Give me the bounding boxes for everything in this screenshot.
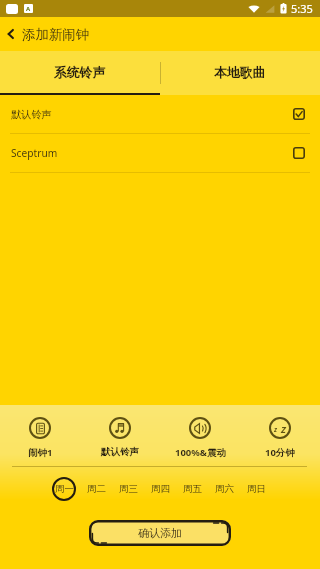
staticText: 周五 bbox=[183, 483, 202, 495]
button[interactable]: 100%&震动 bbox=[160, 417, 240, 459]
button[interactable]: 默认铃声 bbox=[80, 417, 160, 458]
button[interactable]: 周六 bbox=[212, 477, 236, 501]
staticText: z bbox=[274, 425, 278, 434]
button[interactable]: Back bbox=[0, 23, 22, 45]
staticText: 周一 bbox=[55, 483, 74, 495]
button[interactable]: 闹钟1 bbox=[0, 417, 80, 459]
staticText: 周六 bbox=[215, 483, 234, 495]
staticText: A bbox=[26, 5, 31, 13]
staticText: 周三 bbox=[119, 483, 138, 495]
staticText: 周日 bbox=[247, 483, 266, 495]
staticText: Sceptrum bbox=[11, 146, 58, 160]
button[interactable]: 周二 bbox=[84, 477, 108, 501]
staticText: 默认铃声 bbox=[11, 108, 52, 121]
staticText: 100%&震动 bbox=[175, 446, 226, 459]
staticText: 确认添加 bbox=[138, 526, 182, 540]
button[interactable]: 系统铃声 bbox=[0, 51, 160, 95]
staticText: 添加新闹钟 bbox=[22, 26, 89, 43]
button[interactable]: 本地歌曲 bbox=[160, 51, 320, 95]
staticText: 周二 bbox=[87, 483, 106, 495]
button[interactable]: 周三 bbox=[116, 477, 140, 501]
button[interactable]: 确认添加 bbox=[89, 520, 231, 546]
staticText: 本地歌曲 bbox=[214, 65, 266, 81]
staticText: Z bbox=[281, 423, 286, 435]
staticText: 10分钟 bbox=[265, 446, 295, 459]
button[interactable]: 默认铃声 bbox=[0, 95, 320, 133]
button[interactable]: 周日 bbox=[244, 477, 268, 501]
staticText: 5:35 bbox=[291, 1, 313, 16]
staticText: 周四 bbox=[151, 483, 170, 495]
button[interactable]: 周一 bbox=[52, 477, 76, 501]
staticText: 闹钟1 bbox=[28, 446, 53, 459]
staticText: 系统铃声 bbox=[54, 65, 106, 81]
button[interactable]: z bbox=[240, 417, 320, 459]
button[interactable]: 周四 bbox=[148, 477, 172, 501]
button[interactable]: 周五 bbox=[180, 477, 204, 501]
staticText: 默认铃声 bbox=[101, 446, 139, 458]
button[interactable]: Sceptrum bbox=[0, 134, 320, 172]
